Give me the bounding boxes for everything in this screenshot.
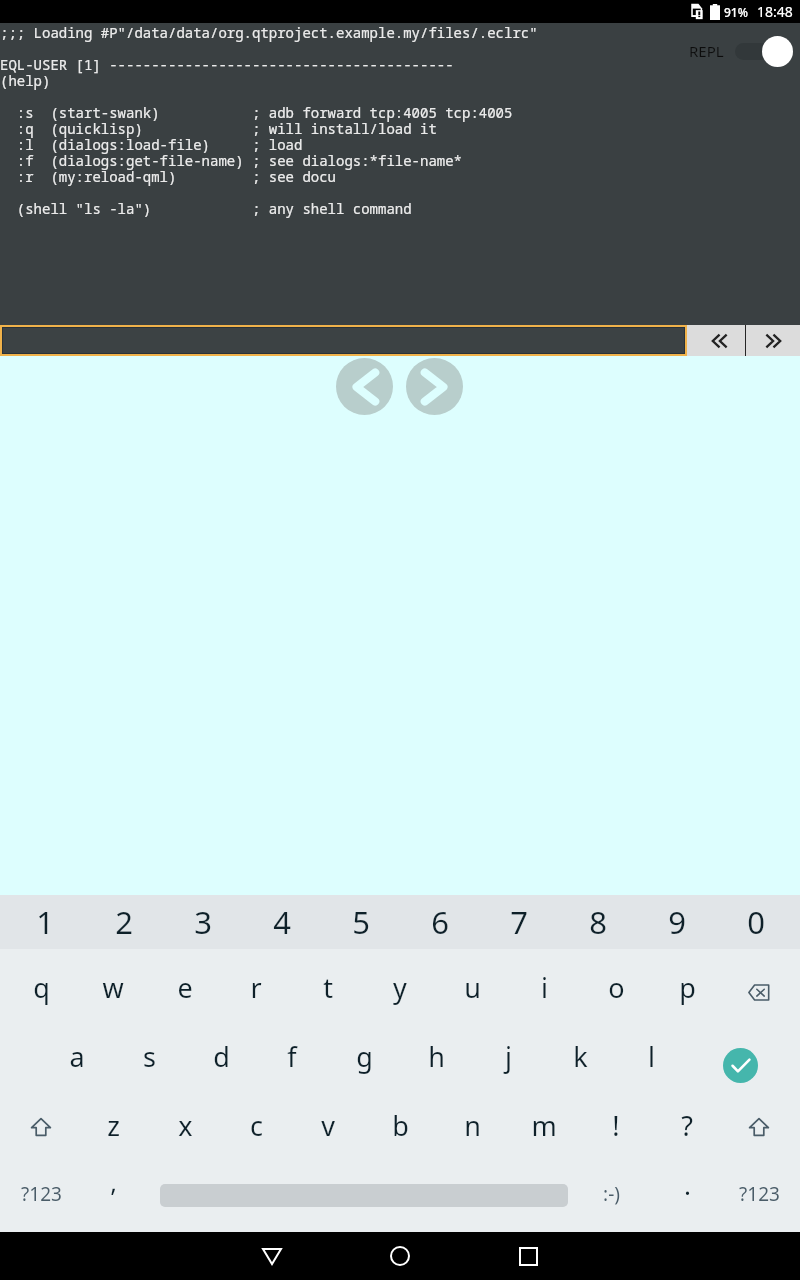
button[interactable]: r xyxy=(220,949,292,1018)
button[interactable]: Back xyxy=(336,358,393,415)
button[interactable]: Space xyxy=(159,1155,568,1231)
staticText: e xyxy=(177,969,193,1006)
button[interactable]: 6 xyxy=(400,895,479,949)
button[interactable]: t xyxy=(292,949,364,1018)
button[interactable]: s xyxy=(113,1018,185,1087)
button[interactable]: b xyxy=(364,1087,436,1156)
button[interactable]: 1 xyxy=(5,895,84,949)
staticText: ! xyxy=(612,1107,620,1144)
staticText: k xyxy=(573,1038,588,1075)
button[interactable]: Enter xyxy=(702,1018,795,1087)
staticText: :r (my:reload-qml) ; see docu xyxy=(0,169,336,185)
button[interactable]: 7 xyxy=(479,895,558,949)
button[interactable]: l xyxy=(615,1018,687,1087)
staticText: REPL xyxy=(689,41,724,61)
staticText: a xyxy=(69,1038,85,1075)
button[interactable]: Shift xyxy=(5,1087,77,1156)
staticText: g xyxy=(356,1038,373,1075)
staticText: 18:48 xyxy=(757,2,793,21)
staticText: :-) xyxy=(603,1181,620,1207)
button[interactable]: Next xyxy=(746,325,800,356)
button[interactable]: f xyxy=(256,1018,328,1087)
button[interactable]: e xyxy=(149,949,221,1018)
staticText: x xyxy=(178,1107,193,1144)
staticText: j xyxy=(505,1038,512,1075)
button[interactable]: c xyxy=(220,1087,292,1156)
button[interactable]: 2 xyxy=(84,895,163,949)
button[interactable]: Forward xyxy=(406,358,463,415)
button[interactable]: o xyxy=(580,949,652,1018)
button[interactable]: w xyxy=(77,949,149,1018)
button[interactable]: q xyxy=(5,949,77,1018)
staticText: 2 xyxy=(115,901,133,943)
button[interactable]: 0 xyxy=(716,895,795,949)
button[interactable]: Back xyxy=(240,1232,304,1280)
button[interactable]: a xyxy=(41,1018,113,1087)
staticText: o xyxy=(608,969,625,1006)
button[interactable]: x xyxy=(149,1087,221,1156)
button[interactable]: Home xyxy=(368,1232,432,1280)
staticText: :s (start-swank) ; adb forward tcp:4005 … xyxy=(0,105,513,121)
button[interactable]: Shift xyxy=(723,1087,795,1156)
button[interactable]: Period xyxy=(651,1155,723,1231)
button[interactable]: 3 xyxy=(163,895,242,949)
staticText: 5 xyxy=(352,901,370,943)
button[interactable]: h xyxy=(400,1018,472,1087)
button[interactable]: Symbols xyxy=(5,1155,77,1231)
button[interactable]: Previous xyxy=(687,325,745,356)
staticText: :l (dialogs:load-file) ; load xyxy=(0,137,303,153)
staticText: p xyxy=(679,969,696,1006)
button[interactable]: 8 xyxy=(558,895,637,949)
button[interactable]: REPL toggle xyxy=(685,35,795,67)
button[interactable]: Backspace xyxy=(723,949,795,1018)
staticText: r xyxy=(250,969,262,1006)
button[interactable]: 9 xyxy=(637,895,716,949)
button[interactable]: k xyxy=(544,1018,616,1087)
staticText: , xyxy=(110,1165,117,1199)
button[interactable]: Comma xyxy=(77,1155,149,1231)
staticText: EQL-USER [1] ---------------------------… xyxy=(0,57,454,73)
button[interactable]: y xyxy=(364,949,436,1018)
button[interactable]: u xyxy=(436,949,508,1018)
button[interactable]: 4 xyxy=(242,895,321,949)
staticText: 3 xyxy=(194,901,212,943)
staticText: 9 xyxy=(668,901,686,943)
staticText: n xyxy=(464,1107,481,1144)
staticText: 4 xyxy=(273,901,291,943)
staticText: (help) xyxy=(0,73,51,89)
button[interactable]: n xyxy=(436,1087,508,1156)
button[interactable]: v xyxy=(292,1087,364,1156)
staticText: 8 xyxy=(589,901,607,943)
button[interactable]: g xyxy=(328,1018,400,1087)
button[interactable]: ? xyxy=(651,1087,723,1156)
staticText: t xyxy=(323,969,333,1006)
staticText: 6 xyxy=(431,901,449,943)
button[interactable]: z xyxy=(77,1087,149,1156)
staticText: ;;; Loading #P"/data/data/org.qtproject.… xyxy=(0,25,538,41)
button[interactable]: ! xyxy=(580,1087,652,1156)
staticText: c xyxy=(250,1107,263,1144)
staticText: s xyxy=(143,1038,156,1075)
button[interactable]: Recent apps xyxy=(496,1232,560,1280)
button[interactable]: j xyxy=(472,1018,544,1087)
staticText: y xyxy=(393,969,407,1006)
staticText: 91% xyxy=(724,4,748,20)
staticText: z xyxy=(107,1107,120,1144)
staticText: 0 xyxy=(747,901,765,943)
staticText: h xyxy=(428,1038,445,1075)
button[interactable]: Emoji xyxy=(580,1155,652,1231)
button[interactable]: i xyxy=(508,949,580,1018)
button[interactable]: m xyxy=(508,1087,580,1156)
button[interactable]: Symbols xyxy=(723,1155,795,1231)
staticText: d xyxy=(213,1038,230,1075)
staticText: · xyxy=(684,1174,691,1209)
button[interactable]: 5 xyxy=(321,895,400,949)
staticText: l xyxy=(648,1038,655,1075)
staticText: w xyxy=(102,969,124,1006)
button[interactable]: p xyxy=(651,949,723,1018)
button[interactable]: d xyxy=(185,1018,257,1087)
staticText: 1 xyxy=(36,901,54,943)
staticText: b xyxy=(392,1107,409,1144)
staticText: :f (dialogs:get-file-name) ; see dialogs… xyxy=(0,153,462,169)
